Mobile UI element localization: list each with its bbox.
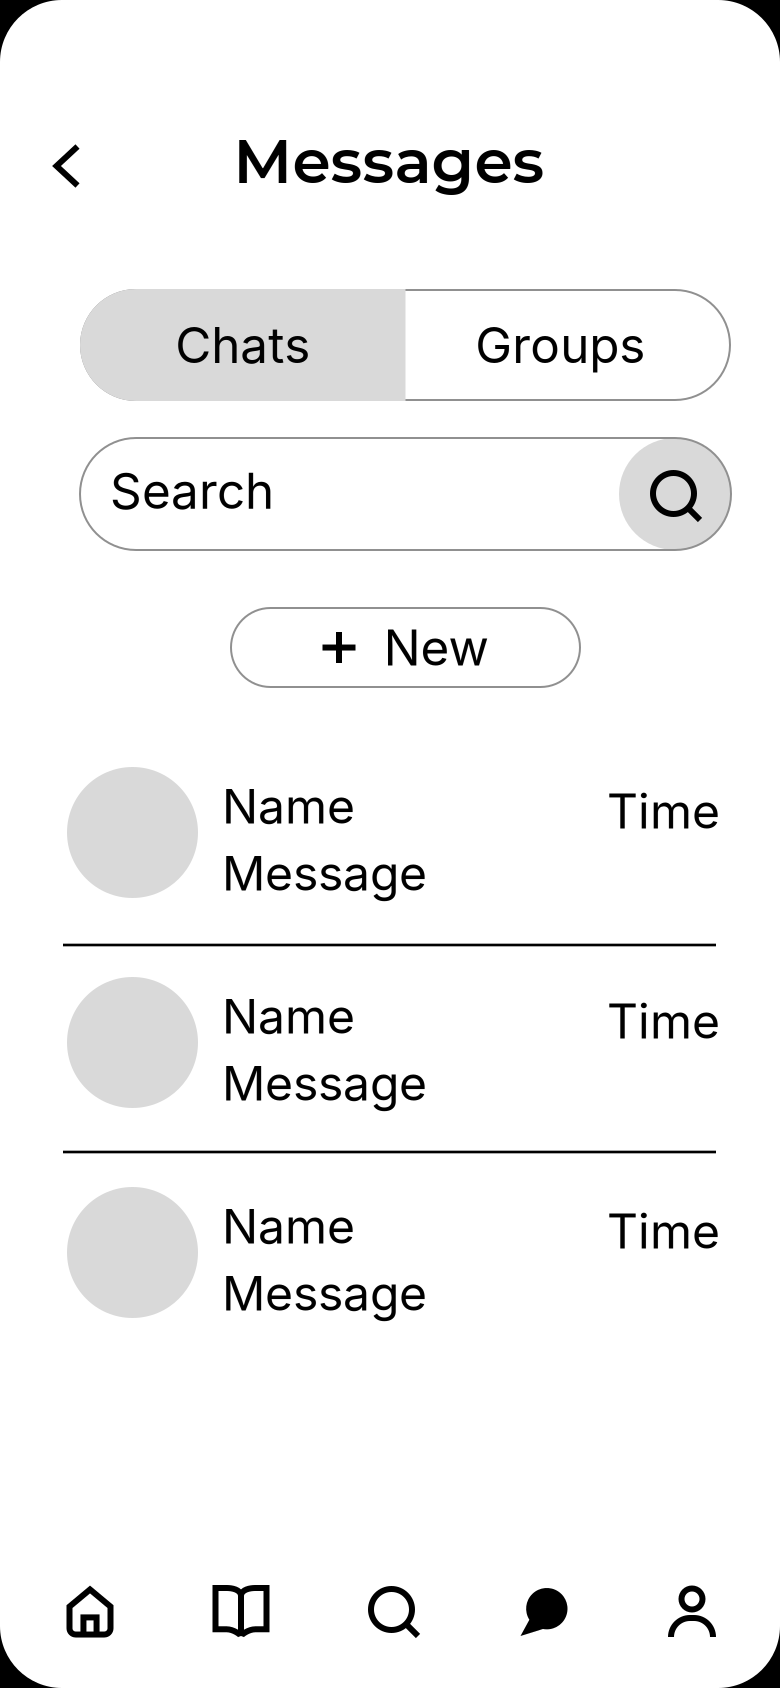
staticText: Chats: [175, 315, 310, 375]
staticText: Message: [222, 1264, 427, 1322]
button[interactable]: Chats: [80, 289, 405, 401]
staticText: New: [383, 618, 488, 677]
button[interactable]: Name: [63, 967, 716, 1142]
button[interactable]: Library: [175, 1551, 305, 1671]
button[interactable]: New: [231, 608, 580, 687]
button[interactable]: Search: [328, 1551, 458, 1671]
staticText: Groups: [475, 315, 645, 375]
button[interactable]: Messages: [480, 1551, 610, 1671]
button[interactable]: Name: [63, 757, 716, 932]
button[interactable]: Home: [24, 1551, 154, 1671]
staticText: Time: [607, 782, 720, 840]
staticText: Messages: [233, 124, 544, 198]
staticText: Name: [222, 777, 355, 835]
staticText: Time: [607, 1202, 720, 1260]
staticText: Search: [110, 461, 274, 521]
staticText: Name: [222, 1197, 355, 1255]
staticText: Message: [222, 1054, 427, 1112]
button[interactable]: Groups: [405, 289, 731, 401]
staticText: Name: [222, 987, 355, 1045]
button[interactable]: Back: [22, 121, 112, 211]
staticText: Time: [607, 992, 720, 1050]
button[interactable]: Profile: [626, 1551, 756, 1671]
staticText: Message: [222, 844, 427, 902]
button[interactable]: Search: [619, 438, 731, 550]
button[interactable]: Name: [63, 1177, 716, 1352]
